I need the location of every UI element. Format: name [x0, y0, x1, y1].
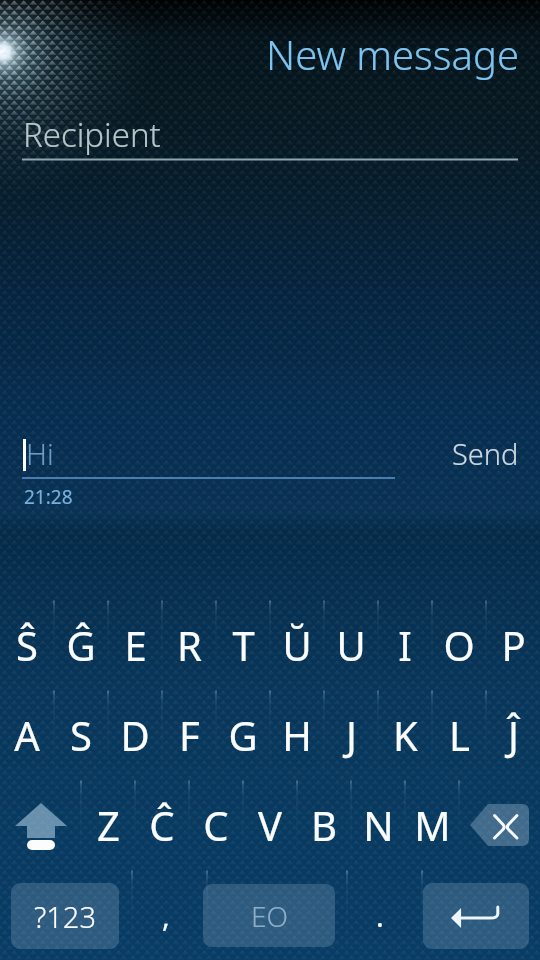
staticText: Send: [452, 434, 519, 473]
staticText: Recipient: [23, 112, 161, 157]
button[interactable]: Ĉ: [135, 780, 189, 870]
button[interactable]: J: [324, 690, 378, 780]
button[interactable]: Ŭ: [270, 600, 324, 690]
button[interactable]: R: [162, 600, 216, 690]
button[interactable]: Send: [429, 425, 496, 475]
button[interactable]: C: [189, 780, 243, 870]
button[interactable]: N: [351, 780, 405, 870]
staticText: S: [70, 708, 92, 762]
staticText: ,: [162, 896, 170, 935]
button[interactable]: Recipient: [0, 108, 540, 160]
button[interactable]: Enter: [423, 883, 529, 949]
staticText: N: [363, 798, 394, 852]
staticText: V: [258, 798, 282, 852]
staticText: Z: [97, 798, 120, 852]
button[interactable]: G: [216, 690, 270, 780]
staticText: G: [228, 708, 258, 762]
staticText: C: [203, 798, 229, 852]
button[interactable]: F: [162, 690, 216, 780]
button[interactable]: I: [378, 600, 432, 690]
button[interactable]: A: [0, 690, 54, 780]
staticText: I: [398, 618, 412, 672]
staticText: J: [346, 708, 357, 762]
staticText: Ŭ: [282, 618, 312, 672]
staticText: Ŝ: [16, 618, 38, 672]
button[interactable]: O: [432, 600, 486, 690]
button[interactable]: U: [324, 600, 378, 690]
staticText: F: [179, 708, 200, 762]
staticText: U: [336, 618, 366, 672]
button[interactable]: .: [344, 870, 416, 960]
staticText: Hi: [26, 434, 54, 473]
staticText: ?123: [34, 897, 96, 936]
button[interactable]: M: [405, 780, 459, 870]
staticText: E: [124, 618, 147, 672]
button[interactable]: Hi: [0, 425, 540, 475]
button[interactable]: Ŝ: [0, 600, 54, 690]
staticText: O: [443, 618, 475, 672]
staticText: M: [414, 798, 451, 852]
staticText: D: [120, 708, 150, 762]
button[interactable]: Backspace: [459, 780, 540, 870]
button[interactable]: EO: [203, 884, 335, 947]
staticText: R: [177, 618, 202, 672]
button[interactable]: T: [216, 600, 270, 690]
staticText: K: [393, 708, 418, 762]
staticText: EO: [251, 897, 288, 935]
staticText: Ĝ: [66, 618, 96, 672]
button[interactable]: V: [243, 780, 297, 870]
button[interactable]: D: [108, 690, 162, 780]
button[interactable]: Shift: [0, 780, 81, 870]
button[interactable]: S: [54, 690, 108, 780]
staticText: P: [501, 618, 526, 672]
button[interactable]: K: [378, 690, 432, 780]
button[interactable]: ,: [130, 870, 202, 960]
button[interactable]: ?123: [11, 883, 119, 949]
staticText: L: [449, 708, 470, 762]
staticText: 21:28: [24, 484, 73, 510]
button[interactable]: Ĵ: [486, 690, 540, 780]
staticText: A: [14, 708, 40, 762]
button[interactable]: E: [108, 600, 162, 690]
button[interactable]: L: [432, 690, 486, 780]
button[interactable]: P: [486, 600, 540, 690]
button[interactable]: Z: [81, 780, 135, 870]
button[interactable]: H: [270, 690, 324, 780]
staticText: H: [282, 708, 312, 762]
staticText: .: [376, 896, 384, 935]
staticText: New message: [266, 27, 519, 81]
staticText: Ĵ: [508, 708, 519, 762]
staticText: T: [232, 618, 255, 672]
button[interactable]: Ĝ: [54, 600, 108, 690]
button[interactable]: B: [297, 780, 351, 870]
staticText: Ĉ: [149, 798, 175, 852]
staticText: B: [311, 798, 337, 852]
